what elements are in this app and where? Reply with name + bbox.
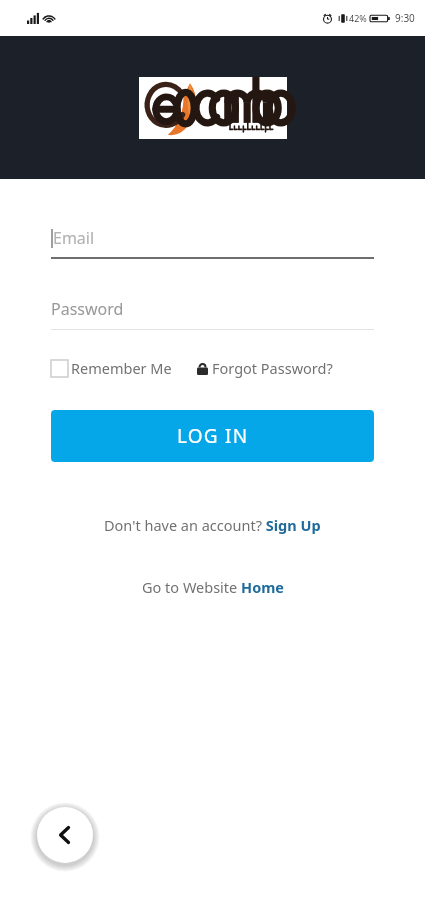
button[interactable]: Forgot Password — [197, 358, 333, 378]
button[interactable]: Remember Me — [51, 358, 172, 378]
staticText: Email — [53, 227, 95, 249]
button[interactable]: Back — [37, 807, 93, 863]
button[interactable]: Go to Website Home — [142, 577, 284, 597]
button[interactable]: Email — [51, 227, 374, 259]
staticText: 9:30 — [395, 11, 415, 25]
staticText: Remember Me — [71, 358, 172, 378]
staticText: Password — [51, 298, 124, 320]
staticText: Forgot Password? — [212, 358, 333, 378]
staticText: 42% — [349, 12, 367, 24]
other: Forgot Password — [197, 362, 208, 375]
button[interactable]: LOG IN — [51, 410, 374, 462]
staticText: Go to Website Home — [142, 577, 284, 597]
button[interactable]: Don't have an account? Sign Up — [104, 515, 321, 535]
staticText: Don't have an account? Sign Up — [104, 515, 321, 535]
staticText: LOG IN — [177, 423, 249, 449]
button[interactable]: Password — [51, 298, 374, 330]
